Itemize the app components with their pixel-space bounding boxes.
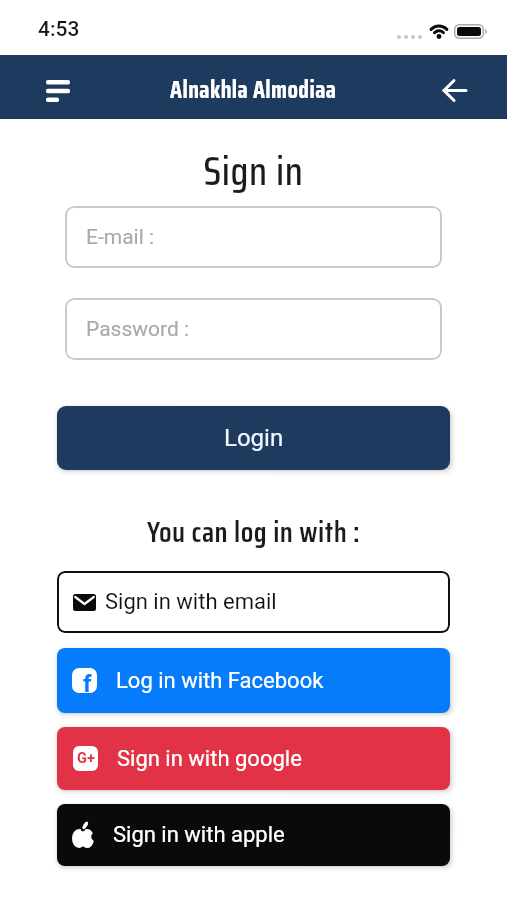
staticText: Log in with Facebook [116, 668, 324, 694]
staticText: Sign in [0, 140, 507, 203]
button[interactable]: G+ [57, 727, 450, 790]
button[interactable]: Password : [65, 298, 442, 360]
staticText: Alnakhla Almodiaa [170, 71, 337, 109]
staticText: E-mail : [86, 225, 155, 250]
staticText: You can log in with : [0, 509, 507, 555]
button[interactable]: Sign in with apple [57, 804, 450, 866]
staticText: Sign in with google [117, 746, 302, 772]
button[interactable]: Sign in with email [57, 571, 450, 633]
staticText: G+ [77, 750, 95, 767]
staticText: Sign in with email [105, 589, 277, 615]
button[interactable]: E-mail : [65, 206, 442, 268]
staticText: Sign in with apple [113, 822, 285, 848]
staticText: 4:53 [38, 17, 80, 42]
button[interactable]: f [57, 648, 450, 713]
staticText: f [83, 670, 92, 693]
button[interactable]: Login [57, 406, 450, 470]
staticText: Password : [86, 317, 190, 342]
button[interactable] [36, 70, 80, 112]
button[interactable] [432, 68, 476, 112]
staticText: Login [224, 424, 284, 452]
